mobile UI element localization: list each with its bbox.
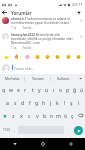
staticText: ü (80, 86, 84, 93)
button[interactable]: z (9, 109, 17, 122)
button[interactable]: Ana sayfa (29, 138, 57, 150)
staticText: h (42, 99, 46, 106)
staticText: r (24, 86, 27, 93)
staticText: d (21, 99, 25, 106)
button[interactable]: l (61, 96, 68, 109)
button[interactable]: Emoji (34, 53, 41, 60)
staticText: u (45, 86, 49, 93)
button[interactable]: Yorum ekle... (14, 66, 83, 70)
button[interactable]: m (55, 109, 62, 122)
button[interactable]: Begen (78, 33, 84, 39)
button[interactable]: n (48, 109, 55, 122)
button[interactable]: Merhaba (0, 74, 24, 83)
button[interactable]: e (15, 83, 22, 96)
button[interactable]: ç (69, 109, 76, 122)
staticText: 1 sa Yanitla (11, 26, 32, 30)
button[interactable]: ı (50, 83, 57, 96)
button[interactable]: Geri (1, 9, 8, 16)
staticText: b (43, 112, 47, 119)
staticText: 1 sa Yanitla (11, 46, 32, 50)
staticText: v (36, 112, 39, 119)
button[interactable]: a (3, 96, 11, 109)
staticText: Kullanic (57, 76, 70, 81)
button[interactable]: s (11, 96, 19, 109)
staticText: Merhaba (5, 76, 20, 81)
staticText: ş (70, 99, 73, 106)
button[interactable]: r (22, 83, 29, 96)
button[interactable]: Genislet (76, 74, 85, 83)
button[interactable]: Sil (76, 109, 85, 122)
button[interactable]: Emoji (44, 53, 51, 60)
staticText: t (32, 86, 34, 93)
button[interactable]: Emoji (75, 53, 82, 60)
button[interactable]: Son uygulamalar (57, 138, 85, 150)
button[interactable]: Emoji (54, 53, 61, 60)
button[interactable]: Emoji (65, 53, 72, 60)
staticText: 20:11 (72, 2, 83, 8)
staticText: m (56, 112, 61, 119)
button[interactable]: Geri (0, 138, 29, 150)
button[interactable]: Gonder (74, 126, 83, 135)
staticText: i (78, 99, 80, 106)
button[interactable]: p (64, 83, 71, 96)
button[interactable]: Emoji (13, 53, 20, 60)
button[interactable]: j (47, 96, 54, 109)
staticText: x (20, 112, 23, 119)
button[interactable]: Filtrele (76, 10, 82, 16)
staticText: g (35, 99, 39, 106)
button[interactable]: k (54, 96, 61, 109)
staticText: fantasyfan2222 Benzinlerde aldi buzdolab… (11, 33, 73, 45)
button[interactable]: b (41, 109, 48, 122)
button[interactable]: ü (78, 83, 85, 96)
staticText: ahmet.k.1 kahramanmaras ve adana ici mem… (11, 17, 71, 25)
button[interactable]: g (33, 96, 40, 109)
staticText: y (38, 86, 41, 93)
staticText: , (14, 127, 16, 133)
staticText: c (28, 112, 31, 119)
button[interactable]: q (0, 83, 8, 96)
button[interactable]: Emoji (24, 53, 31, 60)
staticText: ç (71, 112, 74, 119)
staticText: k (56, 99, 59, 106)
button[interactable]: ğ (71, 83, 78, 96)
button[interactable]: ö (62, 109, 69, 122)
button[interactable]: i (75, 96, 82, 109)
button[interactable]: f (26, 96, 33, 109)
button[interactable]: t (29, 83, 36, 96)
button[interactable]: c (25, 109, 33, 122)
button[interactable]: x (17, 109, 25, 122)
staticText: e (17, 86, 20, 93)
staticText: Tamam (32, 76, 44, 81)
staticText: ?123 (3, 128, 10, 132)
button[interactable]: , (12, 122, 18, 138)
button[interactable]: y (36, 83, 43, 96)
button[interactable]: Profil (2, 64, 10, 72)
button[interactable]: ?123 (0, 122, 12, 138)
staticText: z (12, 112, 15, 119)
button[interactable]: Shift (0, 109, 9, 122)
button[interactable]: Kullanic (51, 74, 76, 83)
button[interactable]: ş (68, 96, 75, 109)
button[interactable]: h (40, 96, 47, 109)
button[interactable]: Profil (2, 33, 9, 40)
staticText: o (59, 86, 63, 93)
button[interactable]: Profil (2, 17, 9, 24)
button[interactable]: Emoji (3, 53, 10, 60)
button[interactable]: d (19, 96, 26, 109)
button[interactable]: u (43, 83, 50, 96)
staticText: l (64, 99, 66, 106)
staticText: f (29, 99, 31, 106)
staticText: ö (64, 112, 68, 119)
staticText: ı (53, 86, 55, 93)
button[interactable]: v (33, 109, 41, 122)
staticText: a (6, 99, 9, 106)
button[interactable]: Begen (78, 17, 84, 23)
button[interactable]: Tamam (25, 74, 50, 83)
staticText: Yorum ekle... (14, 66, 35, 70)
button[interactable]: o (57, 83, 64, 96)
staticText: . (67, 127, 69, 133)
staticText: w (9, 86, 14, 93)
button[interactable]: w (8, 83, 15, 96)
